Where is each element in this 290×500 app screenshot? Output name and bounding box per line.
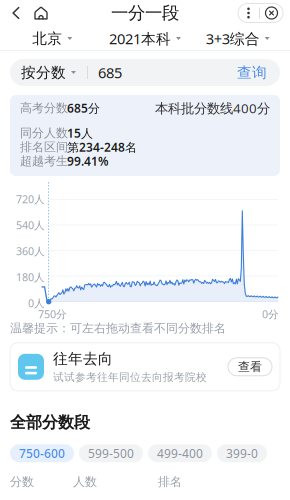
staticText: 0人	[28, 296, 45, 310]
staticText: 人数	[73, 474, 97, 489]
button[interactable]: 往年去向	[0, 336, 290, 391]
staticText: 分数	[10, 474, 34, 489]
button[interactable]: 599-500	[79, 444, 143, 462]
staticText: 3+3综合	[206, 29, 260, 48]
button[interactable]: Close	[260, 3, 283, 22]
staticText: 第234-248名	[67, 139, 137, 155]
staticText: 本科批分数线400分	[155, 99, 270, 117]
button[interactable]: 查询	[224, 59, 280, 86]
button[interactable]: 499-400	[148, 444, 212, 462]
staticText: 750-600	[19, 445, 65, 461]
staticText: 排名	[158, 474, 182, 489]
staticText: 720人	[16, 192, 45, 206]
staticText: 同分人数	[20, 126, 68, 140]
staticText: 按分数	[21, 63, 66, 81]
staticText: 高考分数	[20, 101, 68, 115]
staticText: 排名区间	[20, 140, 68, 154]
staticText: 99.41%	[67, 153, 109, 169]
staticText: 试试参考往年同位去向报考院校	[53, 371, 207, 384]
staticText: 540人	[16, 218, 45, 232]
staticText: 399-0	[226, 445, 258, 461]
staticText: 599-500	[88, 445, 134, 461]
button[interactable]: 750-600	[10, 444, 74, 462]
staticText: 温馨提示：可左右拖动查看不同分数排名	[10, 321, 226, 336]
staticText: 499-400	[157, 445, 203, 461]
button[interactable]: Back	[4, 0, 28, 25]
staticText: 685	[98, 63, 122, 82]
staticText: 750分	[38, 307, 67, 321]
button[interactable]: 2021本科	[99, 26, 191, 50]
button[interactable]: 按分数	[10, 59, 87, 86]
staticText: 全部分数段	[10, 413, 90, 432]
button[interactable]: 399-0	[217, 444, 267, 462]
staticText: 685分	[67, 100, 100, 116]
button[interactable]: 北京	[6, 26, 99, 50]
button[interactable]: Home	[28, 0, 54, 25]
staticText: 一分一段	[111, 2, 179, 24]
staticText: 北京	[32, 29, 62, 47]
staticText: 180人	[16, 270, 45, 284]
staticText: 查询	[237, 63, 267, 81]
staticText: 查看	[238, 359, 262, 374]
staticText: 超越考生	[20, 154, 68, 168]
staticText: 0分	[262, 307, 279, 321]
button[interactable]: More	[238, 3, 259, 22]
staticText: 往年去向	[53, 350, 113, 368]
staticText: 2021本科	[109, 29, 171, 48]
staticText: 360人	[16, 244, 45, 258]
staticText: 15人	[67, 125, 93, 141]
button[interactable]: 3+3综合	[191, 26, 284, 50]
